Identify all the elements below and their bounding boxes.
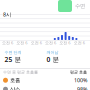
staticText: 호흡	[10, 77, 20, 84]
staticText: 오전 6	[59, 40, 70, 45]
staticText: 수면	[75, 3, 85, 9]
staticText: 98%	[77, 86, 87, 90]
staticText: 오전 6	[16, 40, 27, 45]
staticText: 오전 6	[2, 40, 13, 45]
staticText: 산소	[10, 86, 20, 90]
staticText: 수면 단계	[4, 50, 21, 55]
staticText: 100%	[74, 77, 87, 84]
staticText: 25 분	[4, 55, 21, 64]
staticText: 오전 6	[74, 40, 85, 45]
staticText: 깨어남	[46, 50, 58, 55]
staticText: 8시	[3, 11, 11, 18]
staticText: 오전 6	[45, 40, 56, 45]
staticText: 0 분	[46, 55, 59, 64]
staticText: 평균 호흡	[70, 70, 87, 75]
staticText: 수면 중 평균 호흡률	[3, 70, 38, 75]
staticText: 오전 6	[31, 40, 42, 45]
